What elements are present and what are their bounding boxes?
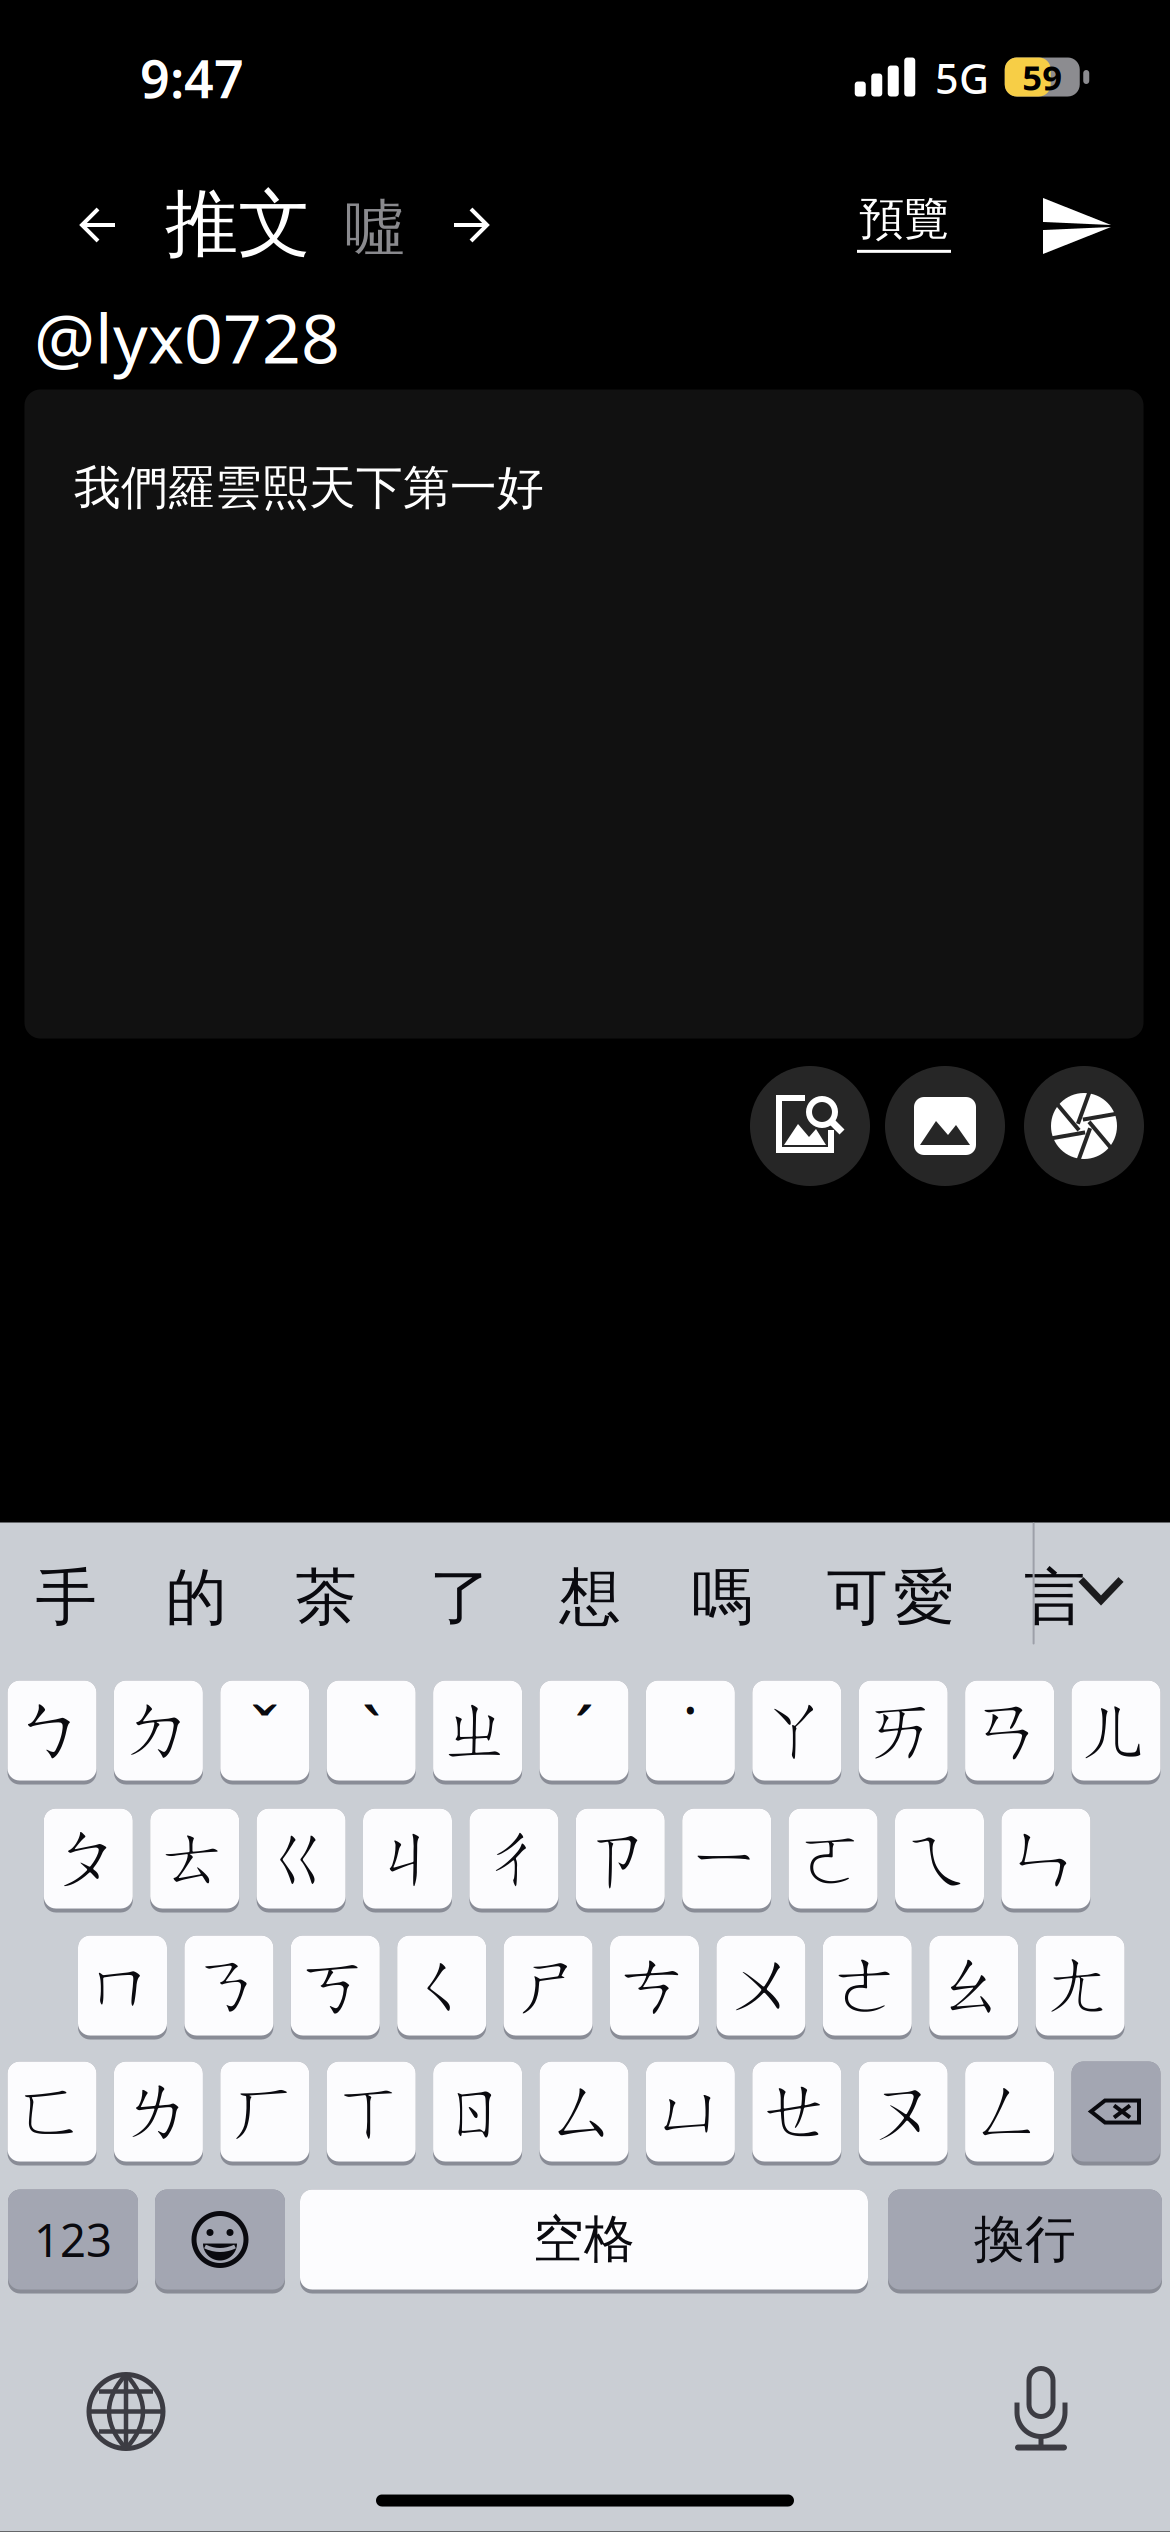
staticText: 空格	[533, 2208, 635, 2271]
button[interactable]: ㄚ	[752, 1680, 841, 1780]
staticText: 換行	[974, 2208, 1076, 2271]
staticText: ㄖ	[443, 2069, 513, 2154]
staticText: 手	[35, 1560, 96, 1635]
button[interactable]: 想	[540, 1542, 640, 1652]
button[interactable]: ㄉ	[114, 1680, 203, 1780]
button[interactable]: ㄘ	[610, 1935, 699, 2035]
button[interactable]: ㄑ	[397, 1935, 486, 2035]
staticText: 9:47	[140, 43, 244, 113]
staticText: 的	[165, 1560, 226, 1635]
button[interactable]: ㄨ	[716, 1935, 805, 2035]
button[interactable]: 123	[8, 2189, 138, 2289]
staticText: ㄩ	[655, 2069, 725, 2154]
staticText: ㄦ	[1081, 1688, 1151, 1773]
button[interactable]: ㄗ	[576, 1808, 665, 1908]
button[interactable]: ㄥ	[965, 2061, 1054, 2161]
staticText: ㄆ	[53, 1816, 123, 1901]
button[interactable]: Camera	[1024, 1066, 1144, 1186]
button[interactable]: 愛	[874, 1542, 974, 1652]
button[interactable]: 手	[16, 1542, 116, 1652]
staticText: 預覽	[859, 191, 949, 247]
staticText: ㄅ	[17, 1688, 87, 1773]
staticText: 123	[34, 2209, 112, 2270]
staticText: ㄓ	[443, 1688, 513, 1773]
button[interactable]: ㄣ	[1001, 1808, 1090, 1908]
staticText: ㄏ	[230, 2069, 300, 2154]
button[interactable]: ㄜ	[823, 1935, 912, 2035]
button[interactable]: ㄅ	[7, 1680, 96, 1780]
button[interactable]: Next keyboard	[71, 2356, 181, 2466]
button[interactable]: ㄟ	[895, 1808, 984, 1908]
button[interactable]: ㄕ	[504, 1935, 593, 2035]
staticText: ㄕ	[513, 1943, 583, 2028]
button[interactable]: ㄖ	[433, 2061, 522, 2161]
button[interactable]: 可	[807, 1542, 907, 1652]
staticText: 嗎	[691, 1560, 752, 1635]
button[interactable]: Dictation	[987, 2353, 1097, 2463]
button[interactable]: 換行	[888, 2189, 1162, 2289]
button[interactable]: ˙	[646, 1680, 735, 1780]
staticText: ˙	[684, 1684, 697, 1777]
button[interactable]: ˇ	[220, 1680, 309, 1780]
staticText: ㄥ	[975, 2069, 1045, 2154]
staticText: 5G	[935, 51, 989, 105]
button[interactable]: ㄋ	[184, 1935, 273, 2035]
button[interactable]: 了	[410, 1542, 510, 1652]
button[interactable]: ㄓ	[433, 1680, 522, 1780]
button[interactable]: 預覽	[839, 177, 969, 267]
button[interactable]: Search media	[750, 1066, 870, 1186]
staticText: 想	[559, 1560, 620, 1635]
button[interactable]: ㄍ	[257, 1808, 346, 1908]
button[interactable]: ㄠ	[929, 1935, 1018, 2035]
button[interactable]: ㄇ	[78, 1935, 167, 2035]
button[interactable]: ˋ	[327, 1680, 416, 1780]
staticText: 我們羅雲熙天下第一好	[74, 459, 544, 517]
button[interactable]: 空格	[300, 2189, 868, 2289]
button[interactable]: ㄙ	[539, 2061, 628, 2161]
button[interactable]: ㄈ	[7, 2061, 96, 2161]
staticText: ㄇ	[87, 1943, 157, 2028]
button[interactable]: ㄝ	[752, 2061, 841, 2161]
staticText: ㄔ	[479, 1816, 549, 1901]
button[interactable]: ㄏ	[220, 2061, 309, 2161]
button[interactable]: ㄆ	[44, 1808, 133, 1908]
button[interactable]: ㄊ	[150, 1808, 239, 1908]
button[interactable]: ˊ	[539, 1680, 628, 1780]
button[interactable]: 嗎	[672, 1542, 772, 1652]
button[interactable]: 茶	[276, 1542, 376, 1652]
staticText: ˊ	[574, 1684, 593, 1777]
button[interactable]: ㄞ	[859, 1680, 948, 1780]
button[interactable]: Backspace	[1071, 2061, 1160, 2161]
staticText: ˇ	[250, 1684, 279, 1777]
staticText: ㄐ	[372, 1816, 442, 1901]
button[interactable]: ㄔ	[469, 1808, 558, 1908]
button[interactable]: ㄡ	[859, 2061, 948, 2161]
button[interactable]: ㄧ	[682, 1808, 771, 1908]
button[interactable]: ㄢ	[965, 1680, 1054, 1780]
button[interactable]: ㄒ	[327, 2061, 416, 2161]
button[interactable]: ㄤ	[1036, 1935, 1125, 2035]
button[interactable]: ㄎ	[291, 1935, 380, 2035]
button[interactable]: Send	[1022, 181, 1132, 271]
staticText: 噓	[345, 191, 405, 265]
staticText: ˋ	[362, 1684, 381, 1777]
staticText: 可	[826, 1560, 887, 1635]
staticText: ㄨ	[726, 1943, 796, 2028]
staticText: ㄟ	[904, 1816, 974, 1901]
staticText: ㄧ	[692, 1816, 762, 1901]
button[interactable]: ㄌ	[114, 2061, 203, 2161]
button[interactable]: ㄛ	[789, 1808, 878, 1908]
button[interactable]: ㄩ	[646, 2061, 735, 2161]
staticText: ㄊ	[160, 1816, 230, 1901]
button[interactable]: 的	[146, 1542, 246, 1652]
button[interactable]: Photo library	[885, 1066, 1005, 1186]
button[interactable]: ㄐ	[363, 1808, 452, 1908]
staticText: ㄝ	[762, 2069, 832, 2154]
staticText: ㄉ	[123, 1688, 193, 1773]
button[interactable]: ㄦ	[1071, 1680, 1160, 1780]
staticText: ㄋ	[194, 1943, 264, 2028]
button[interactable]: Hide candidates	[1051, 1540, 1151, 1640]
button[interactable]: Emoji	[155, 2189, 285, 2289]
button[interactable]: Forward	[428, 182, 514, 268]
button[interactable]: Back	[55, 182, 141, 268]
